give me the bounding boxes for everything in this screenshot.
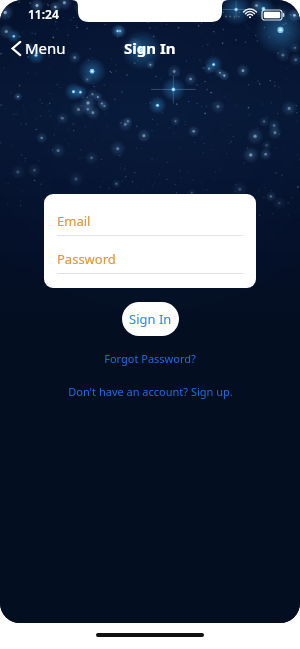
staticText: Forgot Password? [104, 351, 196, 366]
button[interactable]: Sign In [122, 302, 179, 336]
button[interactable]: Menu [6, 34, 72, 62]
staticText: Menu [25, 38, 66, 58]
staticText: Don't have an account? Sign up. [68, 384, 233, 399]
button[interactable]: Email [57, 210, 243, 236]
button[interactable]: Password [57, 248, 243, 274]
staticText: Password [57, 250, 116, 268]
staticText: 11:24 [28, 6, 59, 22]
staticText: Sign In [129, 310, 172, 328]
staticText: Sign In [124, 38, 176, 58]
staticText: Email [57, 212, 91, 230]
button[interactable]: Forgot Password? [96, 348, 204, 369]
button[interactable]: Don't have an account? Sign up. [60, 381, 241, 402]
